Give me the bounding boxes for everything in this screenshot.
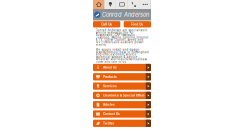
- button[interactable]: Call us: [128, 0, 139, 9]
- staticText: Conrad Anderson are specialists in vehic…: [95, 29, 148, 46]
- button[interactable]: Clearance & Special Offers: [93, 92, 151, 99]
- staticText: Services: [103, 84, 117, 88]
- button[interactable]: More: [139, 0, 151, 9]
- staticText: Contact Us: [103, 112, 120, 116]
- button[interactable]: Twitter: [93, 120, 151, 127]
- staticText: Twitter: [103, 122, 114, 125]
- staticText: We supply, install and design systems fr…: [95, 49, 148, 63]
- button[interactable]: Email us: [116, 0, 128, 9]
- button[interactable]: Find us: [105, 0, 116, 9]
- button[interactable]: About Us: [93, 64, 151, 71]
- staticText: About Us: [103, 66, 117, 69]
- staticText: Find Us: [131, 23, 143, 26]
- button[interactable]: Call Us: [93, 21, 120, 27]
- button[interactable]: Products: [93, 73, 151, 80]
- button[interactable]: Home: [93, 0, 105, 9]
- staticText: Articles: [103, 103, 115, 106]
- staticText: Call Us: [101, 23, 112, 26]
- button[interactable]: Contact Us: [93, 110, 151, 118]
- button[interactable]: Articles: [93, 101, 151, 108]
- button[interactable]: Services: [93, 82, 151, 90]
- staticText: Clearance & Special Offers: [103, 94, 145, 97]
- button[interactable]: Find Us: [124, 21, 151, 27]
- staticText: Products: [103, 75, 117, 78]
- staticText: Conrad Anderson: [102, 12, 148, 18]
